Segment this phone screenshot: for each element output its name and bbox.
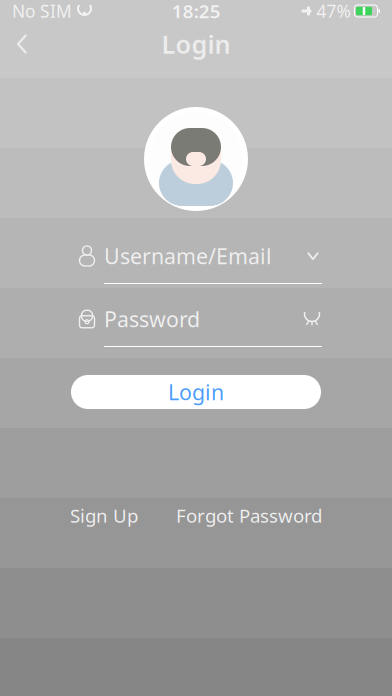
staticText: Forgot Password — [176, 503, 322, 528]
staticText: Sign Up — [70, 503, 138, 528]
button[interactable]: Sign Up — [70, 503, 138, 528]
button[interactable]: Forgot Password — [176, 503, 322, 528]
staticText: Login — [168, 378, 224, 406]
button[interactable]: Back — [0, 22, 44, 66]
staticText: No SIM — [12, 0, 72, 22]
staticText: Username/Email — [104, 242, 272, 270]
staticText: Login — [161, 27, 230, 61]
staticText: 18:25 — [172, 0, 221, 23]
staticText: 47% — [316, 0, 350, 22]
staticText: Password — [104, 305, 200, 333]
button[interactable]: Login — [71, 375, 321, 409]
button[interactable]: Password — [70, 302, 322, 347]
button[interactable]: Username/Email — [70, 239, 322, 284]
